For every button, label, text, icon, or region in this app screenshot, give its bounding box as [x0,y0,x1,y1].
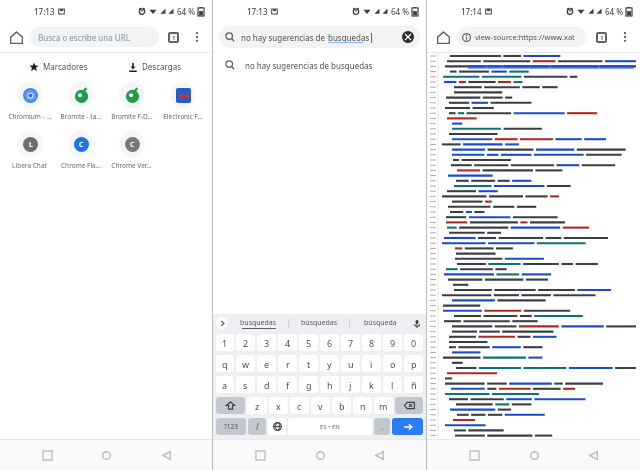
staticText: l [391,379,394,391]
button[interactable]: 2 [236,334,255,351]
button[interactable]: t [299,355,318,372]
staticText: Marcadores [43,61,88,72]
button[interactable]: . [374,418,390,435]
button[interactable]: j [341,376,360,393]
button[interactable]: c [290,397,309,414]
staticText: b [339,400,345,412]
button[interactable]: Tabs [161,25,185,49]
button[interactable]: no hay sugerencias de busquedas [213,52,426,78]
button[interactable]: r [278,355,297,372]
button[interactable]: ?123 [216,418,246,435]
button[interactable]: 1 [216,334,234,351]
button[interactable] [395,397,423,414]
button[interactable]: f [278,376,297,393]
staticText: 5 [306,337,312,349]
staticText: s [243,379,248,391]
button[interactable]: l [383,376,402,393]
button[interactable]: Go [392,418,423,435]
staticText: Chrome Ver... [111,161,152,170]
staticText: 3 [264,337,270,349]
button[interactable]: b [332,397,351,414]
button[interactable]: x [269,397,288,414]
button[interactable]: More suggestions [216,317,228,329]
button[interactable]: h [320,376,339,393]
button[interactable]: a [216,376,234,393]
button[interactable]: u [341,355,360,372]
button[interactable]: ñ [404,376,423,393]
button[interactable]: Language [268,418,286,435]
button[interactable]: Home [3,24,29,50]
button[interactable]: s [236,376,255,393]
button[interactable]: More options [613,25,637,49]
button[interactable]: Home [307,442,333,468]
button[interactable]: w [236,355,255,372]
button[interactable]: Marcadores [10,61,106,72]
staticText: n [360,400,366,412]
staticText: . [381,421,384,432]
button[interactable]: g [299,376,318,393]
button[interactable]: 4 [278,334,297,351]
button[interactable]: m [374,397,393,414]
button[interactable]: 8 [362,334,381,351]
button[interactable] [216,397,245,414]
button[interactable]: Recents [34,442,60,468]
button[interactable]: 6 [320,334,339,351]
button[interactable]: 3 [257,334,276,351]
button[interactable]: Back [366,442,392,468]
button[interactable]: 9 [383,334,402,351]
staticText: o [390,358,396,370]
button[interactable]: More options [185,25,209,49]
button[interactable]: Recents [247,442,273,468]
staticText: 17:13 [34,6,55,17]
staticText: L [29,140,33,150]
button[interactable]: Home [430,24,456,50]
staticText: / [256,421,259,432]
button[interactable]: Voice input [410,317,423,330]
button[interactable]: Back [153,442,179,468]
button[interactable]: Chromium - ... [4,82,55,121]
button[interactable]: 5 [299,334,318,351]
button[interactable]: ES • EN [288,418,372,435]
button[interactable]: Bromite F-D... [106,82,157,121]
staticText: 17:13 [247,6,268,17]
button[interactable]: view-source:https://www.xat [456,27,587,47]
button[interactable]: Bromite - ta... [55,82,106,121]
button[interactable]: k [362,376,381,393]
button[interactable]: búsquedas [289,314,349,332]
button[interactable]: no hay sugerencias de [219,26,420,48]
button[interactable]: o [383,355,402,372]
button[interactable]: Busca o escribe una URL [29,27,159,47]
staticText: m [379,400,388,412]
button[interactable]: búsqueda [350,314,410,332]
button[interactable]: n [353,397,372,414]
button[interactable]: / [248,418,266,435]
staticText: r [286,358,290,370]
button[interactable]: C [106,131,157,170]
button[interactable]: 7 [341,334,360,351]
staticText: 0 [411,337,417,349]
button[interactable]: v [311,397,330,414]
button[interactable]: Home [93,442,119,468]
staticText: 1 [222,337,228,349]
button[interactable]: L [4,131,55,170]
button[interactable]: Recents [461,442,487,468]
button[interactable]: d [257,376,276,393]
button[interactable]: p [404,355,423,372]
button[interactable]: e [257,355,276,372]
button[interactable]: Clear [402,31,414,43]
button[interactable]: i [362,355,381,372]
button[interactable]: Tabs [589,25,613,49]
button[interactable]: Back [580,442,606,468]
button[interactable]: C [55,131,106,170]
button[interactable]: q [216,355,234,372]
button[interactable]: Home [521,442,547,468]
staticText: 64 % [605,6,624,17]
button[interactable]: z [247,397,267,414]
button[interactable]: 0 [404,334,423,351]
staticText: view-source:https://www.xat [475,32,575,42]
button[interactable]: y [320,355,339,372]
button[interactable]: Electronic F... [157,82,208,121]
staticText: 64 % [177,6,196,17]
button[interactable]: Descargas [106,61,202,72]
button[interactable]: busquedas [228,314,288,332]
